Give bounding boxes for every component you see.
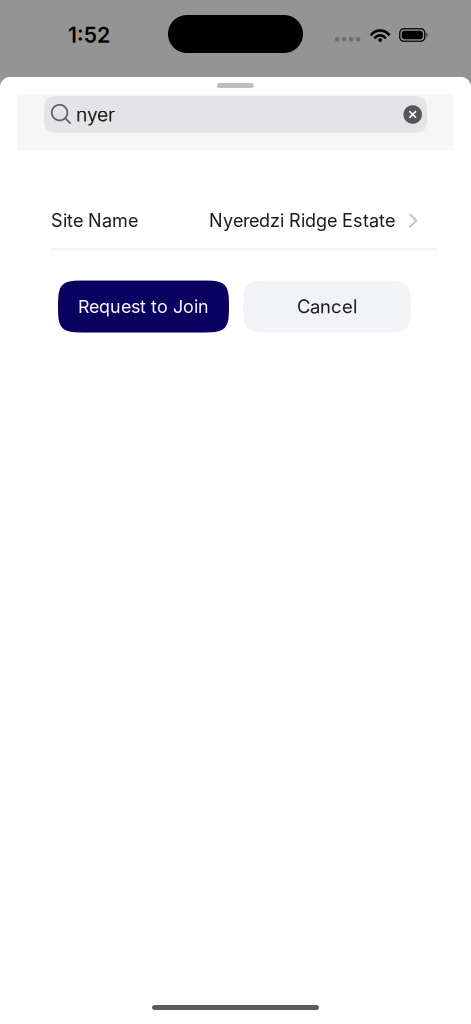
button[interactable]: Request to Join bbox=[58, 280, 229, 332]
staticText: Nyeredzi Ridge Estate bbox=[209, 210, 395, 231]
staticText: Site Name bbox=[51, 210, 138, 231]
staticText: nyer bbox=[76, 103, 115, 126]
staticText: Request to Join bbox=[78, 296, 209, 317]
staticText: 1:52 bbox=[68, 22, 110, 48]
staticText: Cancel bbox=[297, 295, 357, 318]
button[interactable]: Cancel bbox=[243, 280, 411, 332]
button[interactable]: Site Name bbox=[0, 193, 471, 250]
button[interactable]: Clear search text bbox=[401, 103, 424, 126]
